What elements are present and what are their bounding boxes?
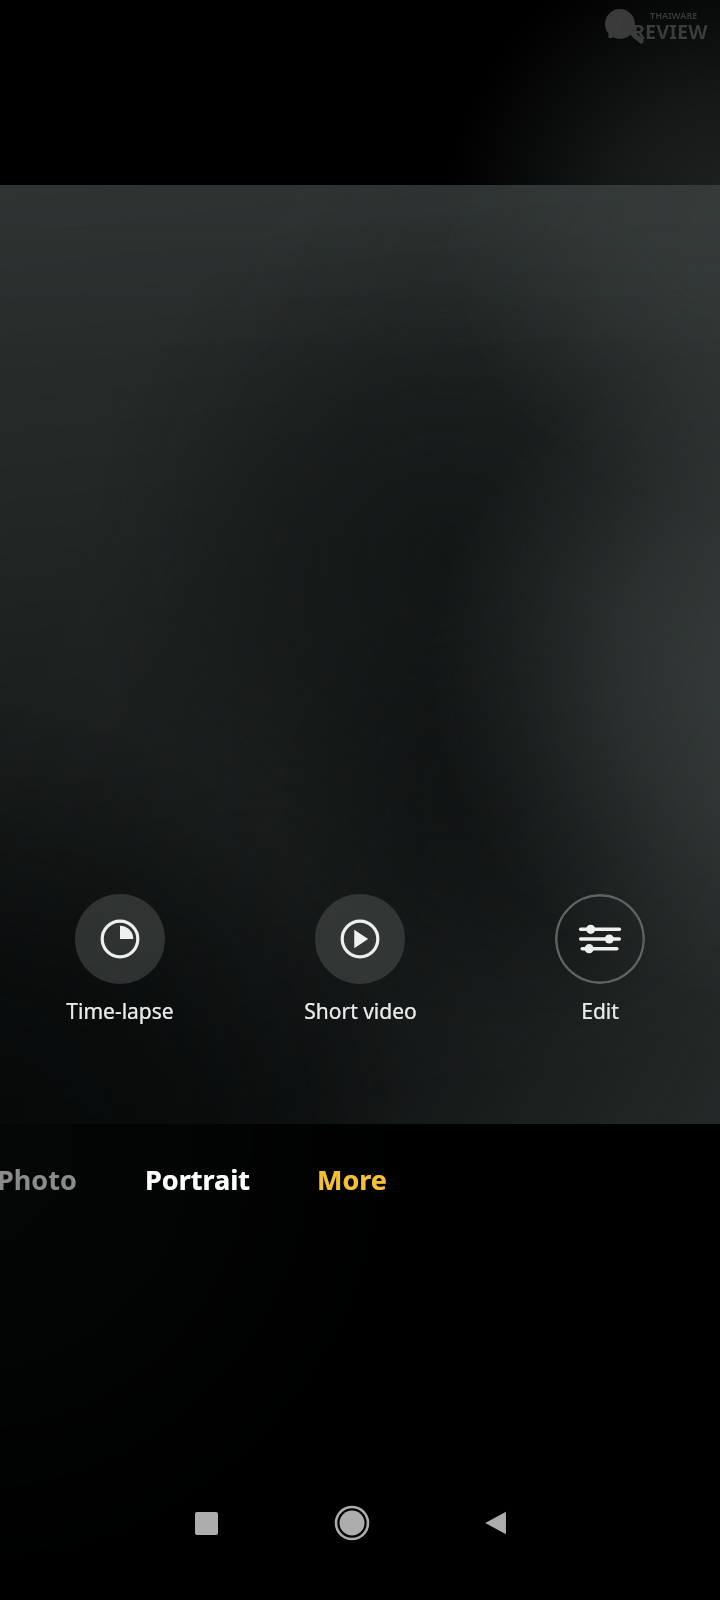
staticText: More — [317, 1161, 387, 1198]
staticText: Edit — [581, 997, 619, 1026]
staticText: REVIEW — [632, 18, 708, 45]
button[interactable]: Time-lapse — [0, 894, 240, 1026]
button[interactable]: Edit — [480, 894, 720, 1026]
staticText: Time-lapse — [66, 997, 174, 1026]
button[interactable]: Short video — [240, 894, 480, 1026]
staticText: THAIWARE — [650, 9, 698, 21]
button[interactable]: Home — [322, 1495, 382, 1551]
button[interactable]: Recent apps — [176, 1495, 236, 1551]
staticText: Short video — [304, 997, 417, 1026]
button[interactable]: Back — [467, 1495, 527, 1551]
staticText: Portrait — [145, 1161, 250, 1198]
button[interactable]: Photo — [0, 1153, 92, 1205]
button[interactable]: More — [292, 1153, 412, 1205]
staticText: R — [606, 8, 625, 46]
button[interactable]: Portrait — [127, 1153, 267, 1205]
staticText: Photo — [0, 1161, 77, 1198]
